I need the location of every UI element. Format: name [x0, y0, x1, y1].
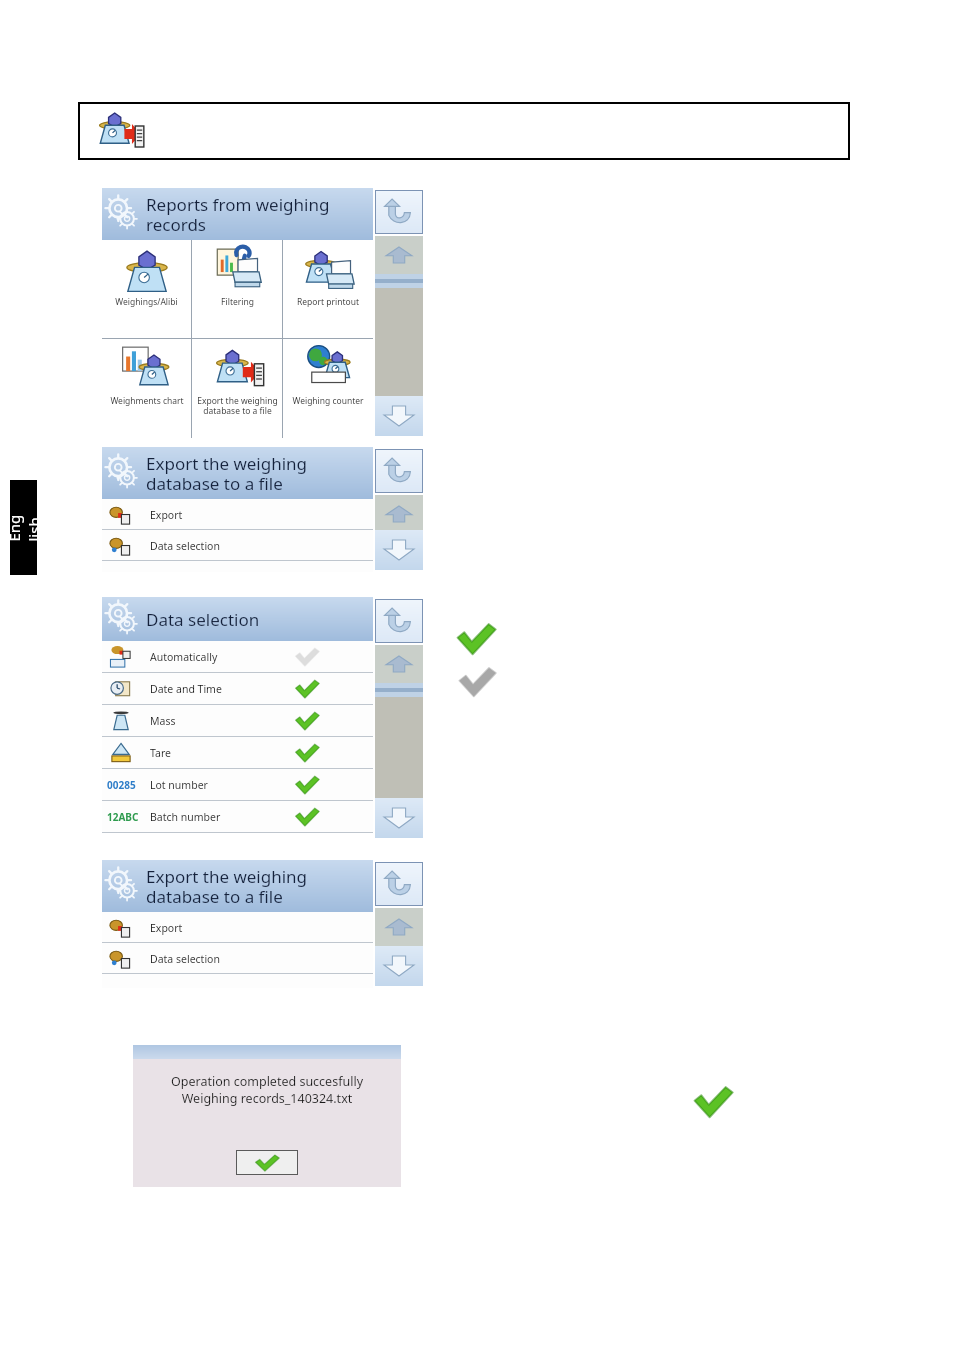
button[interactable]: Automatically: [102, 641, 373, 673]
staticText: Operation completed succesfully Weighing…: [133, 1073, 401, 1106]
staticText: Export: [150, 921, 183, 935]
button[interactable]: Report printout: [283, 240, 373, 338]
staticText: Export the weighing database to a file: [146, 865, 308, 908]
button[interactable]: Data selection: [102, 597, 373, 641]
button[interactable]: Scroll up: [375, 645, 423, 683]
staticText: Filtering: [221, 296, 254, 308]
staticText: Export the weighing database to a file: [197, 395, 278, 416]
button[interactable]: Date and Time: [102, 673, 373, 705]
staticText: Batch number: [150, 810, 221, 824]
button[interactable]: Reports from weighing records: [102, 188, 373, 240]
staticText: Weighings/Alibi: [115, 296, 178, 308]
button[interactable]: 00285: [102, 769, 373, 801]
staticText: Mass: [150, 714, 176, 728]
button[interactable]: Scroll up: [375, 908, 423, 946]
button[interactable]: Filtering: [192, 240, 282, 338]
button[interactable]: Export the weighing database to a file: [192, 339, 282, 438]
staticText: English: [3, 514, 43, 541]
staticText: Export the weighing database to a file: [146, 452, 308, 495]
staticText: Tare: [150, 746, 171, 760]
button[interactable]: Weighing counter: [283, 339, 373, 438]
button[interactable]: Weighments chart: [102, 339, 191, 438]
button[interactable]: Mass: [102, 705, 373, 737]
staticText: Automatically: [150, 650, 218, 664]
button[interactable]: Back: [375, 449, 423, 493]
button[interactable]: [78, 102, 850, 160]
button[interactable]: Scroll down: [375, 396, 423, 436]
staticText: Reports from weighing records: [146, 193, 330, 236]
button[interactable]: OK: [236, 1150, 298, 1175]
button[interactable]: Scroll up: [375, 495, 423, 533]
button[interactable]: Export: [102, 912, 373, 943]
button[interactable]: Export: [102, 499, 373, 530]
button[interactable]: Back: [375, 599, 423, 643]
staticText: Date and Time: [150, 682, 222, 696]
button[interactable]: English: [10, 480, 37, 575]
staticText: 12ABC: [107, 810, 139, 824]
button[interactable]: Weighings/Alibi: [102, 240, 191, 338]
button[interactable]: Scroll up: [375, 236, 423, 274]
staticText: Lot number: [150, 778, 208, 792]
staticText: Data selection: [146, 608, 260, 631]
staticText: 00285: [107, 778, 136, 792]
button[interactable]: Back: [375, 190, 423, 234]
button[interactable]: Data selection: [102, 943, 373, 974]
button[interactable]: Tare: [102, 737, 373, 769]
button[interactable]: Data selection: [102, 530, 373, 561]
staticText: Report printout: [297, 296, 359, 308]
staticText: Weighments chart: [110, 395, 184, 407]
staticText: Data selection: [150, 952, 220, 966]
button[interactable]: Scroll down: [375, 798, 423, 838]
staticText: Export: [150, 508, 183, 522]
button[interactable]: Scroll down: [375, 530, 423, 570]
button[interactable]: Scroll down: [375, 946, 423, 986]
staticText: Weighing counter: [292, 395, 364, 407]
button[interactable]: Export the weighing database to a file: [102, 860, 373, 912]
button[interactable]: 12ABC: [102, 801, 373, 833]
button[interactable]: Export the weighing database to a file: [102, 447, 373, 499]
staticText: Data selection: [150, 539, 220, 553]
button[interactable]: Back: [375, 862, 423, 906]
